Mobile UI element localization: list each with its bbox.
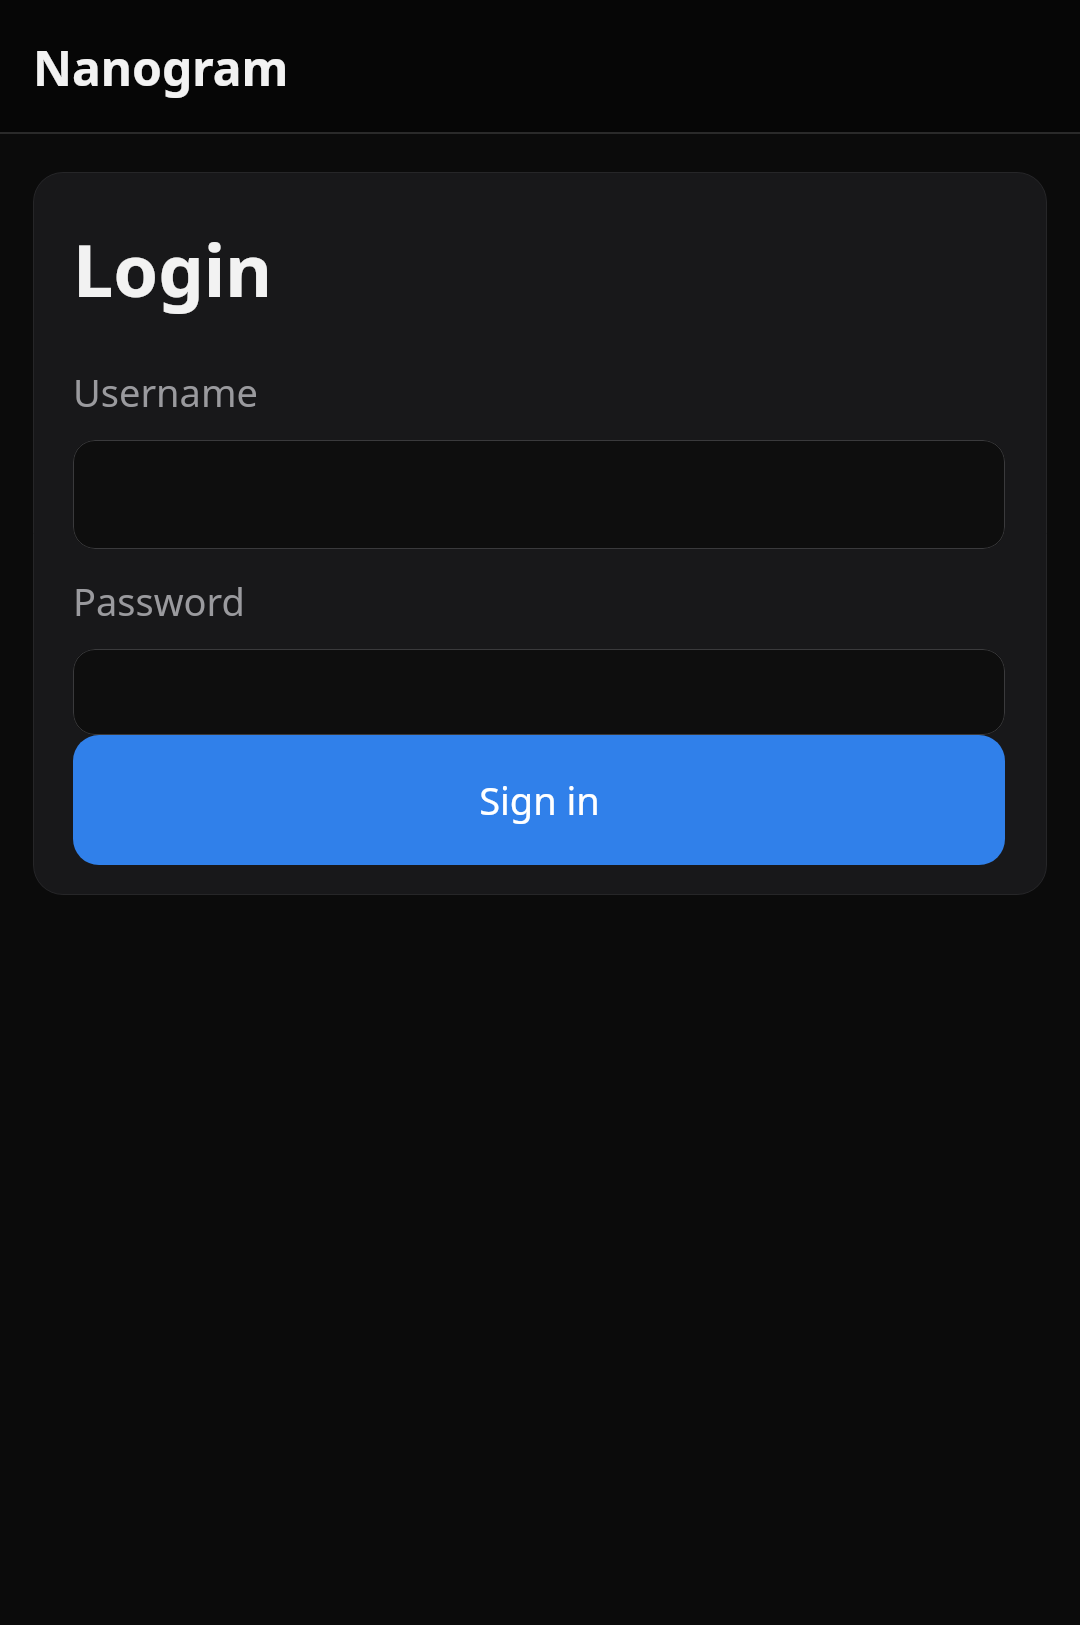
staticText: Nanogram <box>33 35 289 100</box>
staticText: Username <box>73 366 258 418</box>
button[interactable] <box>73 440 1005 549</box>
button[interactable]: Sign in <box>73 735 1005 865</box>
button[interactable] <box>73 649 1005 735</box>
staticText: Password <box>73 575 245 627</box>
staticText: Sign in <box>479 774 600 826</box>
staticText: Login <box>73 220 273 318</box>
